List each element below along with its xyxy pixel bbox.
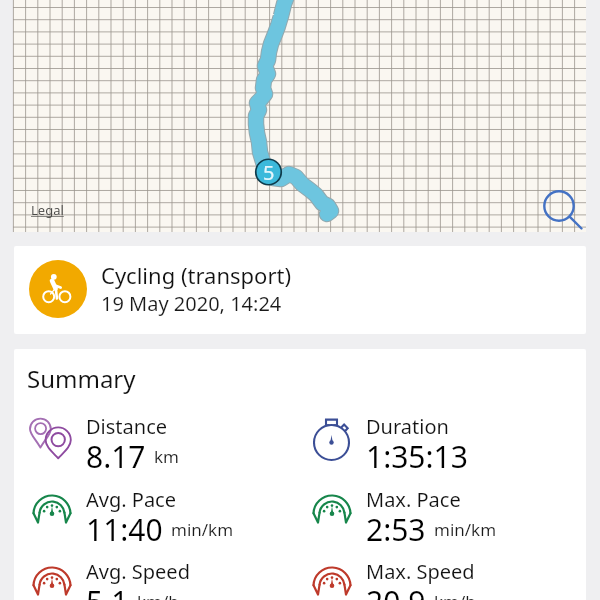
staticText: 5.1 bbox=[86, 581, 129, 600]
staticText: 2:53 bbox=[366, 509, 426, 544]
button[interactable]: Map bbox=[13, 0, 586, 232]
staticText: km/h bbox=[434, 590, 476, 600]
staticText: 5 bbox=[263, 159, 275, 186]
staticText: km bbox=[154, 445, 179, 468]
button[interactable]: Duration bbox=[310, 413, 585, 475]
staticText: 1:35:13 bbox=[366, 436, 468, 471]
button[interactable]: Max. Pace bbox=[310, 486, 585, 548]
staticText: Max. Pace bbox=[366, 486, 461, 513]
staticText: Cycling (transport) bbox=[101, 260, 292, 290]
staticText: min/km bbox=[171, 518, 234, 541]
button[interactable]: Avg. Pace bbox=[30, 486, 305, 548]
staticText: Summary bbox=[27, 362, 136, 395]
staticText: km/h bbox=[137, 590, 179, 600]
staticText: 8.17 bbox=[86, 436, 146, 471]
button[interactable]: Search bbox=[534, 181, 592, 239]
staticText: Max. Speed bbox=[366, 558, 475, 585]
staticText: Legal bbox=[31, 201, 64, 219]
button[interactable]: Avg. Speed bbox=[30, 558, 305, 600]
button[interactable]: Cycling (transport) bbox=[14, 246, 586, 334]
staticText: min/km bbox=[434, 518, 497, 541]
staticText: Avg. Speed bbox=[86, 558, 190, 585]
staticText: Avg. Pace bbox=[86, 486, 176, 513]
button[interactable]: Max. Speed bbox=[310, 558, 585, 600]
button[interactable]: Distance bbox=[30, 413, 305, 475]
staticText: 20.9 bbox=[366, 581, 426, 600]
staticText: Distance bbox=[86, 413, 168, 440]
staticText: 19 May 2020, 14:24 bbox=[101, 290, 282, 317]
staticText: Duration bbox=[366, 413, 449, 440]
staticText: 11:40 bbox=[86, 509, 163, 544]
